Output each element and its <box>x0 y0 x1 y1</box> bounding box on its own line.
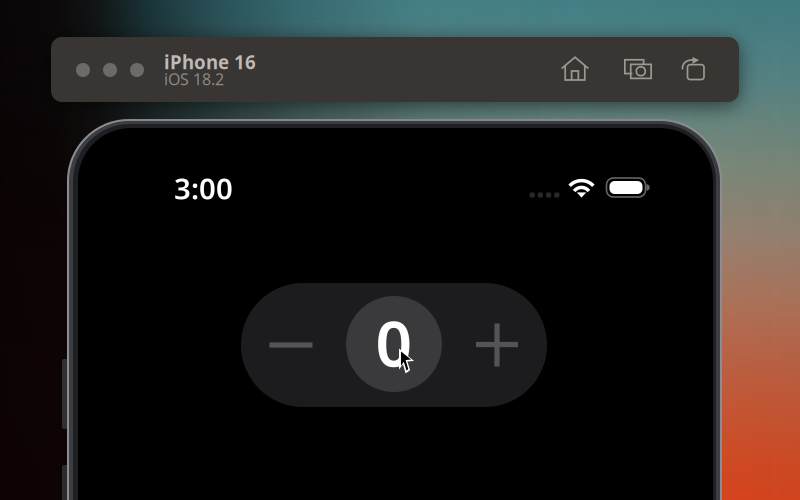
button[interactable]: Close <box>76 63 90 77</box>
button[interactable]: Decrease <box>243 283 339 407</box>
staticText: iOS 18.2 <box>164 68 224 90</box>
staticText: iPhone 16 <box>164 50 256 74</box>
button[interactable]: Screenshot <box>624 57 652 80</box>
button[interactable]: Zoom <box>130 63 144 77</box>
button[interactable]: Increase <box>449 283 545 407</box>
button[interactable]: Minimize <box>103 63 117 77</box>
button[interactable]: Rotate <box>680 56 705 80</box>
staticText: 3:00 <box>174 168 233 207</box>
staticText: 0 <box>375 299 412 384</box>
button[interactable]: Home <box>561 56 589 81</box>
